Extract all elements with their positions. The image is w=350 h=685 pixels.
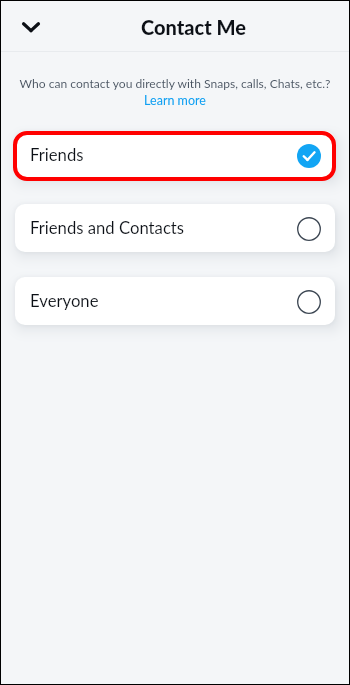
staticText: Everyone	[30, 291, 99, 311]
staticText: Friends	[30, 145, 84, 165]
staticText: Friends and Contacts	[30, 218, 185, 238]
staticText: Who can contact you directly with Snaps,…	[13, 76, 337, 91]
staticText: Contact Me	[141, 15, 246, 39]
button[interactable]: Everyone	[15, 277, 335, 325]
button[interactable]: Friends and Contacts	[15, 204, 335, 252]
button[interactable]: Friends	[15, 131, 335, 179]
button[interactable]: Learn more	[1, 93, 349, 108]
button[interactable]: Close	[10, 6, 52, 48]
